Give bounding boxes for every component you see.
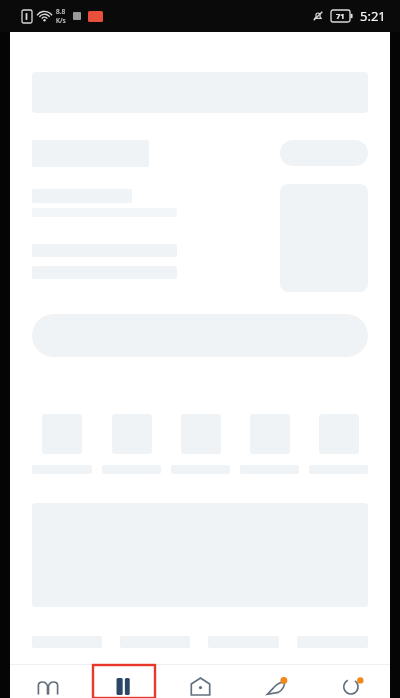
staticText: 71 xyxy=(336,11,345,21)
staticText: 5:21 xyxy=(360,7,386,25)
button[interactable]: Discover xyxy=(238,665,314,698)
button[interactable]: Store xyxy=(162,665,238,698)
button[interactable]: Bookshelf xyxy=(86,665,162,698)
staticText: 8.8 xyxy=(56,7,66,16)
staticText: K/s xyxy=(56,16,66,25)
button[interactable]: Library xyxy=(10,665,86,698)
button[interactable]: Profile xyxy=(314,665,390,698)
